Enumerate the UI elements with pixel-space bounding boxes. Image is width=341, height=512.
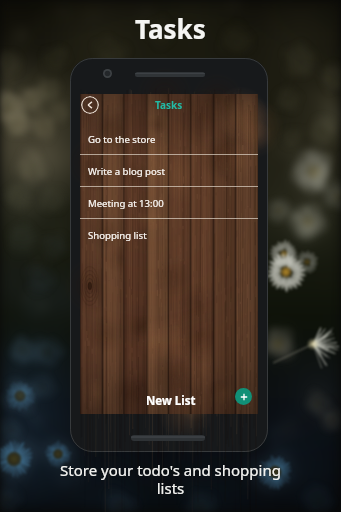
staticText: Shopping list — [88, 229, 147, 242]
button[interactable]: New List — [80, 388, 258, 414]
button[interactable]: Go to the store — [80, 123, 258, 155]
staticText: Go to the store — [88, 133, 156, 146]
staticText: Tasks — [155, 98, 183, 112]
staticText: Write a blog post — [88, 165, 165, 178]
staticText: Tasks — [135, 11, 206, 46]
button[interactable]: Write a blog post — [80, 155, 258, 187]
button[interactable]: Meeting at 13:00 — [80, 187, 258, 219]
button[interactable]: Back — [81, 96, 99, 114]
staticText: Meeting at 13:00 — [88, 197, 164, 210]
button[interactable]: Shopping list — [80, 219, 258, 251]
button[interactable]: Add new list — [235, 388, 252, 405]
staticText: Store your todo's and shopping lists — [60, 460, 281, 499]
staticText: New List — [146, 393, 196, 409]
